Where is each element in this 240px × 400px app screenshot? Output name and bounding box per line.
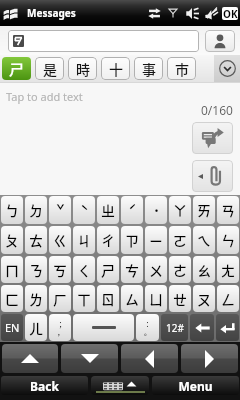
staticText: ㄇ — [5, 260, 19, 280]
button[interactable]: ㄖ — [97, 285, 119, 312]
staticText: ㄝ — [173, 289, 187, 309]
button[interactable]: ㄥ — [217, 285, 239, 312]
button[interactable]: ㄜ — [169, 256, 191, 283]
button[interactable]: Right — [181, 344, 238, 373]
button[interactable]: ˋ — [73, 196, 95, 224]
button[interactable]: ㄅ — [1, 196, 23, 224]
button[interactable]: ㄠ — [193, 256, 215, 283]
button[interactable]: ㄛ — [169, 226, 191, 254]
button[interactable]: ㄍ — [49, 226, 71, 254]
button[interactable]: ； ， — [49, 314, 71, 341]
button[interactable]: More candidates — [214, 55, 240, 82]
button[interactable]: ˊ — [121, 196, 143, 224]
staticText: Menu — [178, 378, 213, 394]
staticText: Tap to add text — [6, 89, 83, 104]
button[interactable]: 時 — [68, 57, 97, 80]
button[interactable]: ㄈ — [1, 285, 23, 312]
staticText: ㄓ — [101, 200, 115, 220]
staticText: Back — [30, 378, 59, 394]
button[interactable]: ㄑ — [73, 256, 95, 283]
button[interactable]: ㄙ — [121, 285, 143, 312]
button[interactable]: 是 — [35, 57, 64, 80]
staticText: ㄊ — [29, 230, 43, 250]
staticText: ㄑ — [77, 260, 91, 280]
button[interactable]: ㄣ — [217, 226, 239, 254]
button[interactable]: ㄨ — [145, 256, 167, 283]
button[interactable]: ： 。 — [136, 314, 159, 341]
button[interactable]: ㄎ — [49, 256, 71, 283]
staticText: ㄘ — [125, 260, 139, 280]
staticText: ㄉ — [29, 200, 43, 220]
button[interactable]: Back — [1, 376, 88, 395]
staticText: 市 — [175, 59, 189, 79]
button[interactable]: ˙ — [145, 196, 167, 224]
button[interactable]: Start — [3, 6, 18, 20]
staticText: ㄆ — [5, 230, 19, 250]
staticText: ㄤ — [221, 260, 235, 280]
staticText: ㄚ — [173, 200, 187, 220]
button[interactable]: ㄆ — [1, 226, 23, 254]
button[interactable]: ㄇ — [1, 256, 23, 283]
button[interactable]: 事 — [134, 57, 163, 80]
staticText: ㄕ — [9, 58, 25, 80]
staticText: ㄠ — [197, 260, 211, 280]
button[interactable]: ㄡ — [193, 285, 215, 312]
button[interactable]: ㄉ — [25, 196, 47, 224]
button[interactable]: Up — [2, 344, 58, 373]
button[interactable]: ㄩ — [145, 285, 167, 312]
staticText: ㄍ — [53, 230, 67, 250]
staticText: ㄦ — [29, 318, 43, 338]
staticText: ㄈ — [5, 289, 19, 309]
staticText: ㄔ — [101, 230, 115, 250]
button[interactable]: ㄚ — [169, 196, 191, 224]
staticText: OK — [223, 7, 238, 20]
button[interactable]: ㄋ — [25, 256, 47, 283]
staticText: ㄋ — [29, 260, 43, 280]
button[interactable]: ㄢ — [217, 196, 239, 224]
button[interactable] — [8, 30, 199, 52]
button[interactable]: Enter — [216, 314, 239, 341]
button[interactable]: 12# — [161, 314, 188, 341]
button[interactable]: ㄤ — [217, 256, 239, 283]
staticText: ㄟ — [197, 230, 211, 250]
staticText: ㄖ — [101, 289, 115, 309]
button[interactable]: Menu — [152, 376, 239, 395]
button[interactable]: ㄊ — [25, 226, 47, 254]
button[interactable]: ㄝ — [169, 285, 191, 312]
staticText: ㄥ — [221, 289, 235, 309]
button[interactable]: ㄌ — [25, 285, 47, 312]
staticText: 事 — [142, 59, 156, 79]
button[interactable]: 十 — [101, 57, 130, 80]
staticText: ㄒ — [77, 289, 91, 309]
button[interactable]: ㄞ — [193, 196, 215, 224]
button[interactable]: ㄗ — [121, 226, 143, 254]
button[interactable]: ㄕ — [2, 57, 31, 80]
button[interactable]: ㄒ — [73, 285, 95, 312]
button[interactable]: Contacts — [205, 30, 235, 52]
staticText: EN — [5, 320, 20, 335]
button[interactable]: EN — [1, 314, 23, 341]
staticText: 是 — [43, 59, 57, 79]
button[interactable]: ˇ — [49, 196, 71, 224]
button[interactable] — [73, 314, 134, 341]
button[interactable]: ㄐ — [73, 226, 95, 254]
button[interactable]: ㄏ — [49, 285, 71, 312]
button[interactable]: ㄘ — [121, 256, 143, 283]
button[interactable]: ㄕ — [97, 256, 119, 283]
button[interactable]: ㄧ — [145, 226, 167, 254]
button[interactable]: Attach — [192, 160, 233, 192]
button[interactable]: Backspace — [190, 314, 214, 341]
button[interactable]: Down — [61, 344, 118, 373]
button[interactable]: OK — [222, 7, 238, 20]
staticText: ㄢ — [221, 200, 235, 220]
button[interactable]: 市 — [167, 57, 196, 80]
staticText: ㄩ — [149, 289, 163, 309]
button[interactable]: ㄔ — [97, 226, 119, 254]
button[interactable]: Keyboard — [91, 376, 149, 395]
button[interactable]: ㄓ — [97, 196, 119, 224]
staticText: ㄐ — [77, 230, 91, 250]
button[interactable]: ㄦ — [25, 314, 47, 341]
button[interactable]: ㄟ — [193, 226, 215, 254]
button[interactable]: Send — [192, 122, 233, 154]
button[interactable]: Left — [121, 344, 178, 373]
